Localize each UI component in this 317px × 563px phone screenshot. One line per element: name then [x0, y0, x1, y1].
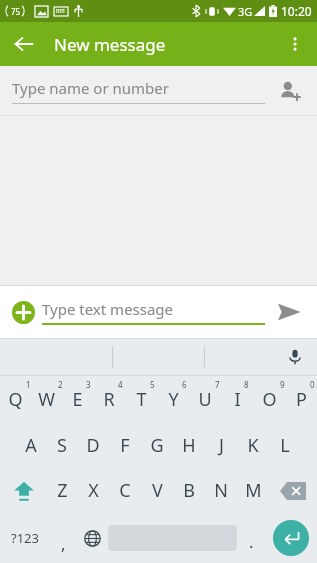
- staticText: C: [119, 478, 131, 503]
- button[interactable]: H: [173, 423, 205, 468]
- button[interactable]: F: [109, 423, 141, 468]
- button[interactable]: Period: [237, 513, 265, 563]
- button[interactable]: Add contact: [271, 72, 309, 110]
- button[interactable]: R: [93, 376, 125, 423]
- button[interactable]: X: [78, 468, 109, 513]
- button[interactable]: L: [269, 423, 301, 468]
- staticText: 2: [58, 379, 63, 390]
- staticText: G: [150, 433, 164, 458]
- button[interactable]: O: [253, 376, 285, 423]
- button[interactable]: S: [46, 423, 77, 468]
- staticText: 75: [11, 6, 21, 17]
- staticText: 8: [244, 379, 249, 390]
- staticText: 7: [215, 379, 220, 390]
- button[interactable]: Send: [269, 292, 309, 332]
- staticText: 10:20: [281, 3, 312, 19]
- staticText: 5: [150, 379, 155, 390]
- staticText: 0: [310, 379, 315, 390]
- staticText: W: [38, 387, 55, 412]
- staticText: R: [103, 387, 115, 412]
- button[interactable]: V: [141, 468, 173, 513]
- button[interactable]: C: [109, 468, 141, 513]
- button[interactable]: A: [15, 423, 46, 468]
- button[interactable]: P: [285, 376, 317, 423]
- staticText: .: [249, 530, 254, 553]
- staticText: I: [234, 387, 241, 412]
- button[interactable]: Voice input: [279, 341, 311, 373]
- staticText: A: [25, 433, 37, 458]
- staticText: 4: [118, 379, 123, 390]
- staticText: D: [86, 433, 100, 458]
- staticText: M: [245, 478, 262, 503]
- button[interactable]: ?123: [0, 513, 49, 563]
- staticText: Type name or number: [12, 78, 169, 98]
- staticText: ,: [61, 532, 66, 555]
- staticText: 3G: [238, 4, 253, 19]
- button[interactable]: G: [141, 423, 173, 468]
- staticText: Z: [57, 478, 68, 503]
- staticText: N: [214, 478, 228, 503]
- button[interactable]: K: [237, 423, 269, 468]
- staticText: H: [182, 433, 196, 458]
- button[interactable]: Backspace: [269, 468, 317, 513]
- staticText: X: [88, 478, 99, 503]
- button[interactable]: E: [62, 376, 93, 423]
- staticText: L: [280, 433, 290, 458]
- staticText: E: [72, 387, 83, 412]
- button[interactable]: Q: [0, 376, 31, 423]
- button[interactable]: T: [125, 376, 157, 423]
- button[interactable]: More options: [275, 24, 315, 64]
- button[interactable]: Type text message: [42, 299, 265, 325]
- staticText: 9: [280, 379, 285, 390]
- button[interactable]: Type name or number: [12, 78, 265, 104]
- button[interactable]: M: [237, 468, 269, 513]
- staticText: Q: [8, 387, 23, 412]
- button[interactable]: Comma: [49, 513, 77, 563]
- button[interactable]: N: [205, 468, 237, 513]
- staticText: 3: [86, 379, 91, 390]
- staticText: V: [152, 478, 163, 503]
- button[interactable]: Back: [4, 24, 44, 64]
- staticText: J: [219, 433, 224, 458]
- button[interactable]: Add attachment: [6, 295, 40, 329]
- staticText: K: [247, 433, 259, 458]
- button[interactable]: Change language: [77, 513, 108, 563]
- staticText: O: [262, 387, 277, 412]
- staticText: 1: [26, 379, 31, 390]
- button[interactable]: Enter: [265, 513, 317, 563]
- button[interactable]: Y: [157, 376, 189, 423]
- staticText: F: [120, 433, 130, 458]
- staticText: P: [296, 387, 307, 412]
- button[interactable]: D: [77, 423, 109, 468]
- button[interactable]: W: [31, 376, 62, 423]
- staticText: New message: [54, 33, 166, 56]
- staticText: B: [183, 478, 195, 503]
- staticText: S: [57, 433, 67, 458]
- button[interactable]: Z: [47, 468, 78, 513]
- staticText: Type text message: [42, 299, 174, 319]
- staticText: 6: [182, 379, 187, 390]
- staticText: ?123: [11, 529, 39, 547]
- button[interactable]: J: [205, 423, 237, 468]
- button[interactable]: B: [173, 468, 205, 513]
- staticText: Y: [168, 387, 179, 412]
- button[interactable]: I: [221, 376, 253, 423]
- button[interactable]: U: [189, 376, 221, 423]
- staticText: T: [136, 387, 147, 412]
- button[interactable]: Shift: [0, 468, 47, 513]
- staticText: U: [198, 387, 212, 412]
